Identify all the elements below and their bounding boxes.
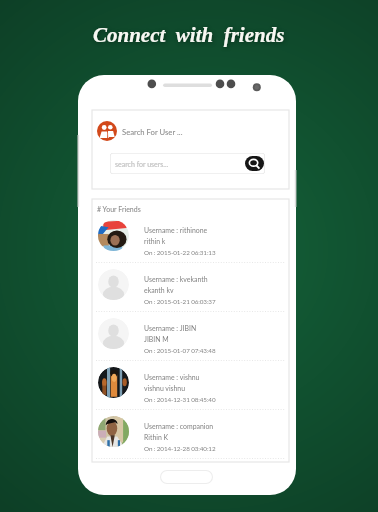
staticText: Username : JIBIN — [144, 324, 197, 332]
staticText: Username : kvekanth — [144, 275, 208, 283]
staticText: Search For User ... — [122, 127, 183, 136]
staticText: JIBIN M — [144, 335, 169, 343]
staticText: Rithin K — [144, 433, 169, 441]
staticText: On : 2015-01-22 06:31:13 — [144, 249, 216, 257]
button[interactable]: search for users... — [110, 153, 265, 174]
staticText: Username : companion — [144, 422, 214, 430]
button[interactable]: Home — [160, 470, 213, 484]
staticText: search for users... — [115, 160, 169, 168]
button[interactable]: Username : rithinone — [92, 214, 289, 262]
button[interactable]: Username : JIBIN — [92, 312, 289, 360]
staticText: Username : vishnu — [144, 373, 200, 381]
staticText: On : 2015-01-07 07:43:48 — [144, 347, 216, 355]
staticText: vishnu vishnu — [144, 384, 186, 392]
button[interactable]: Search — [245, 156, 264, 171]
staticText: rithin k — [144, 237, 166, 245]
staticText: On : 2015-01-21 06:03:37 — [144, 298, 216, 306]
staticText: ekanth kv — [144, 286, 174, 294]
staticText: # Your Friends — [97, 205, 141, 213]
button[interactable]: Username : companion — [92, 410, 289, 458]
staticText: Connect with friends — [93, 23, 285, 46]
button[interactable]: Username : vishnu — [92, 361, 289, 409]
button[interactable]: Username : kvekanth — [92, 263, 289, 311]
staticText: Username : rithinone — [144, 226, 208, 234]
staticText: On : 2014-12-31 08:45:40 — [144, 396, 216, 404]
staticText: On : 2014-12-28 03:40:12 — [144, 445, 216, 453]
